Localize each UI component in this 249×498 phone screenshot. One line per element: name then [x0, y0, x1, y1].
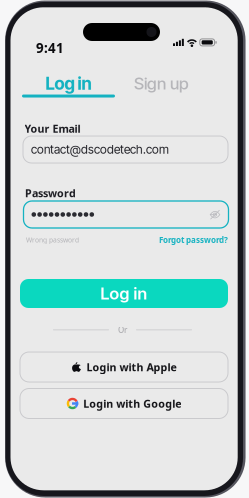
button[interactable]: Sign up: [115, 76, 208, 97]
button[interactable]: Login with Google: [20, 388, 228, 418]
staticText: Your Email: [24, 121, 80, 136]
button[interactable]: Login with Apple: [20, 352, 228, 382]
staticText: Log in: [45, 73, 91, 94]
staticText: Forgot password?: [159, 234, 228, 245]
staticText: 9:41: [36, 39, 64, 57]
staticText: Log in: [100, 283, 147, 304]
staticText: Wrong password: [26, 235, 79, 244]
staticText: Login with Apple: [86, 360, 176, 374]
button[interactable]: Log in: [22, 76, 115, 97]
staticText: Login with Google: [83, 396, 181, 411]
staticText: contact@dscodetech.com: [31, 142, 169, 157]
button[interactable]: Log in: [20, 279, 228, 308]
staticText: Or: [118, 324, 127, 335]
staticText: Sign up: [134, 73, 189, 94]
button[interactable]: Forgot password?: [159, 234, 228, 245]
button[interactable]: Show password: [209, 211, 220, 218]
staticText: Password: [25, 186, 76, 200]
